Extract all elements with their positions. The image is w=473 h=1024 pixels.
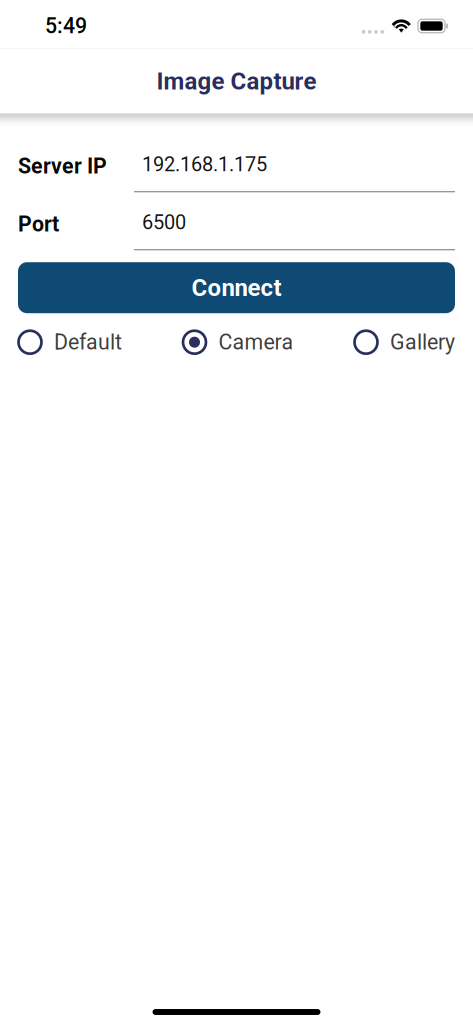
staticText: Connect bbox=[191, 274, 281, 302]
staticText: Gallery bbox=[390, 330, 455, 355]
button[interactable]: Camera bbox=[182, 326, 293, 358]
button[interactable]: Default bbox=[18, 326, 122, 358]
staticText: 5:49 bbox=[45, 13, 87, 38]
staticText: 192.168.1.175 bbox=[142, 153, 267, 176]
button[interactable]: Gallery bbox=[354, 326, 455, 358]
staticText: Camera bbox=[218, 330, 293, 355]
staticText: Port bbox=[18, 212, 59, 237]
button[interactable]: Connect bbox=[18, 262, 455, 313]
staticText: Default bbox=[54, 330, 122, 355]
staticText: 6500 bbox=[142, 211, 186, 234]
staticText: Server IP bbox=[18, 154, 107, 179]
staticText: Image Capture bbox=[156, 67, 316, 95]
